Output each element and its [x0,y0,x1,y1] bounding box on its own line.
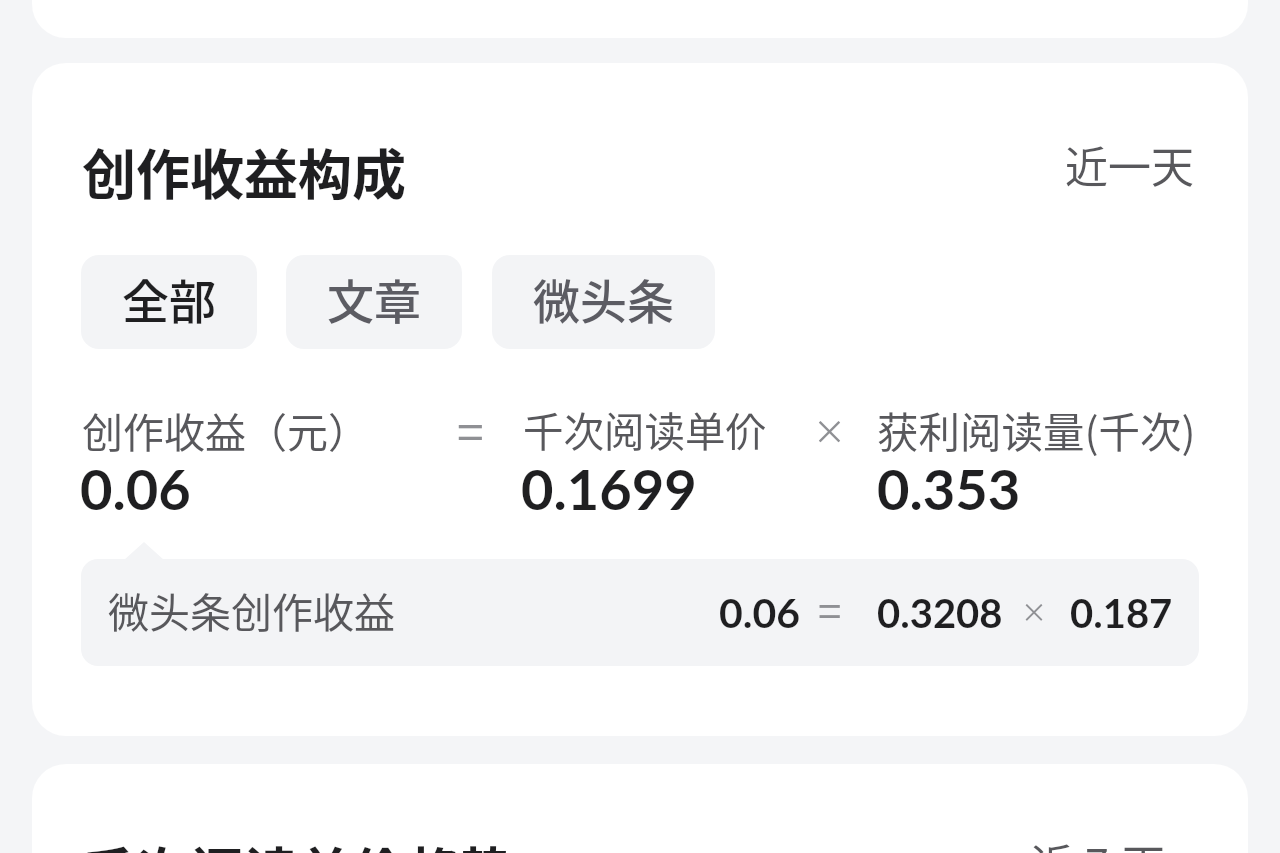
button[interactable]: 微头条 [492,255,715,349]
staticText: 0.187 [1070,589,1173,637]
button[interactable]: 全部 [81,255,257,349]
staticText: × [813,406,846,454]
staticText: = [457,394,484,464]
staticText: 创作收益构成 [82,132,406,210]
staticText: 近 [1031,831,1074,853]
staticText: 天 [1122,831,1165,853]
staticText: 文章 [327,264,421,332]
staticText: 近一天 [1065,133,1194,195]
staticText: 微头条 [533,264,674,332]
button[interactable]: 微头条创作收益 [81,559,1199,666]
staticText: × [1021,592,1048,630]
button[interactable]: 近一天 [1065,133,1194,195]
staticText: 微头条创作收益 [108,580,395,639]
staticText: 7 [1085,831,1109,853]
staticText: 千次阅读单价 [523,400,766,459]
staticText: 0.353 [877,455,1021,522]
staticText: 0.06 [719,588,801,637]
staticText: 0.3208 [877,589,1003,637]
staticText: = [818,578,842,639]
staticText: 获利阅读量(千次) [877,400,1196,460]
staticText: 创作收益（元） [82,400,369,459]
button[interactable]: 文章 [286,255,462,349]
staticText: 全部 [122,264,216,332]
staticText: 0.06 [80,455,191,522]
staticText: 千次阅读单价趋势 [82,830,514,853]
staticText: 0.1699 [521,455,697,522]
